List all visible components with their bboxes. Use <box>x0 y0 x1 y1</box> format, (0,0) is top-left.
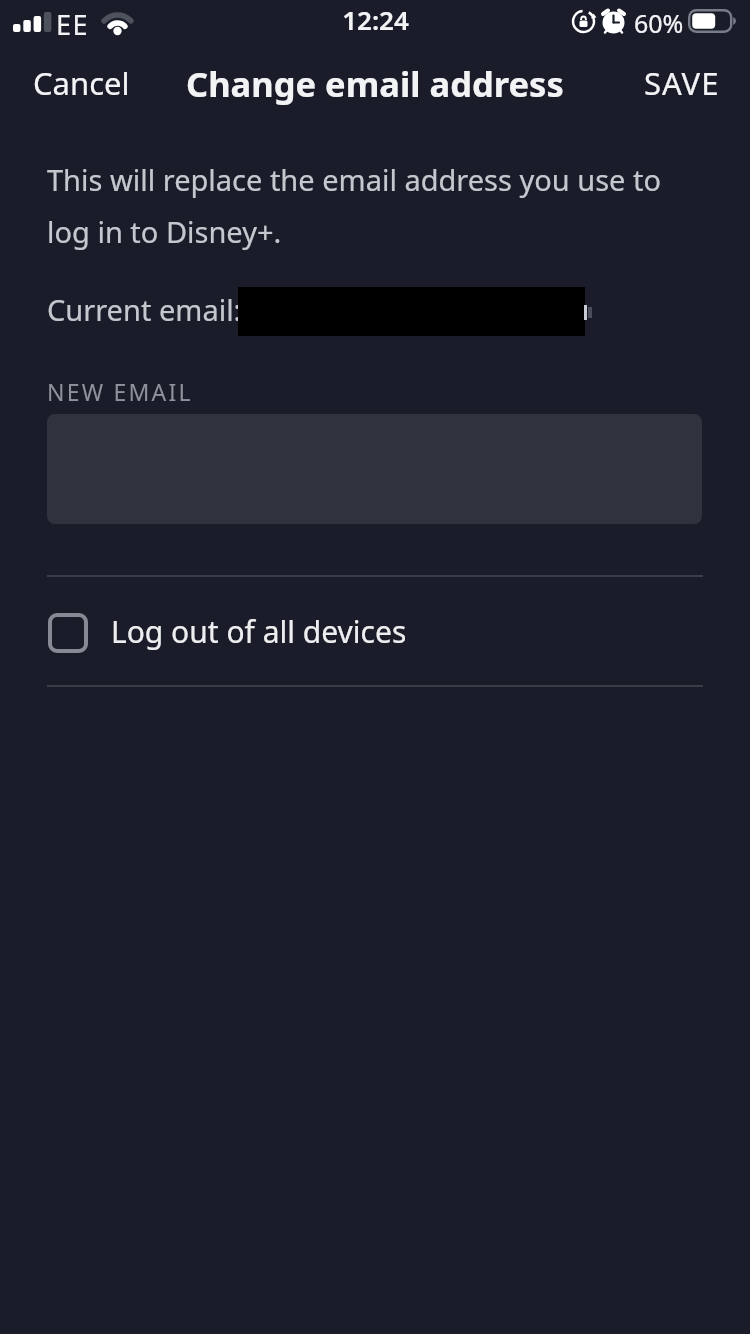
staticText: EE <box>56 6 90 43</box>
staticText: This will replace the email address you … <box>47 160 661 251</box>
button[interactable]: Log out of all devices <box>40 602 460 664</box>
staticText: 60% <box>634 6 684 40</box>
staticText: 12:24 <box>342 2 409 37</box>
staticText: SAVE <box>644 62 720 104</box>
staticText: Current email: <box>47 290 242 329</box>
staticText: Cancel <box>33 62 130 104</box>
staticText: Change email address <box>186 60 564 107</box>
staticText: Log out of all devices <box>111 611 407 652</box>
button[interactable]: Cancel <box>13 44 153 122</box>
button[interactable]: SAVE <box>627 44 737 122</box>
staticText: NEW EMAIL <box>47 376 193 407</box>
